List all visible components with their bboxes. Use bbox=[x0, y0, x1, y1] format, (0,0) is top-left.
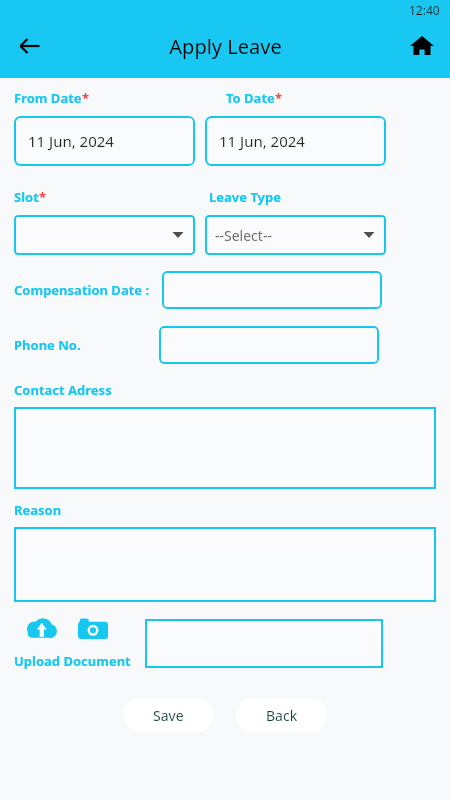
button[interactable]: Phone number field bbox=[159, 326, 379, 364]
button[interactable]: Slot dropdown bbox=[14, 215, 195, 255]
staticText: Leave Type bbox=[209, 188, 282, 206]
staticText: Save bbox=[153, 706, 184, 725]
staticText: Phone No. bbox=[14, 336, 81, 354]
staticText: * bbox=[39, 188, 47, 206]
staticText: Contact Adress bbox=[14, 381, 112, 399]
button[interactable]: Back bbox=[8, 24, 52, 68]
button[interactable]: --Select-- bbox=[205, 215, 386, 255]
button[interactable]: Upload Document bbox=[14, 652, 131, 670]
staticText: * bbox=[275, 89, 283, 107]
staticText: 12:40 bbox=[409, 2, 440, 18]
staticText: --Select-- bbox=[215, 226, 272, 245]
staticText: From Date bbox=[14, 89, 82, 107]
staticText: Reason bbox=[14, 501, 62, 519]
button[interactable]: Reason field bbox=[14, 527, 436, 602]
button[interactable]: 11 Jun, 2024 bbox=[205, 116, 386, 166]
staticText: To Date bbox=[226, 89, 275, 107]
button[interactable]: Back bbox=[236, 698, 327, 732]
button[interactable]: Take photo bbox=[78, 616, 108, 642]
button[interactable]: Contact address field bbox=[14, 407, 436, 489]
button[interactable]: Save bbox=[123, 698, 214, 732]
staticText: 11 Jun, 2024 bbox=[28, 131, 114, 151]
staticText: Compensation Date : bbox=[14, 281, 150, 299]
button[interactable]: Compensation date field bbox=[162, 271, 382, 309]
staticText: Slot bbox=[14, 188, 39, 206]
staticText: Back bbox=[266, 706, 298, 725]
button[interactable]: Upload document bbox=[22, 616, 60, 642]
staticText: Apply Leave bbox=[169, 33, 282, 60]
button[interactable]: Selected document field bbox=[145, 619, 383, 668]
button[interactable]: 11 Jun, 2024 bbox=[14, 116, 195, 166]
button[interactable]: Home bbox=[402, 26, 442, 66]
staticText: Upload Document bbox=[14, 652, 131, 670]
staticText: 11 Jun, 2024 bbox=[219, 131, 305, 151]
staticText: * bbox=[82, 89, 90, 107]
